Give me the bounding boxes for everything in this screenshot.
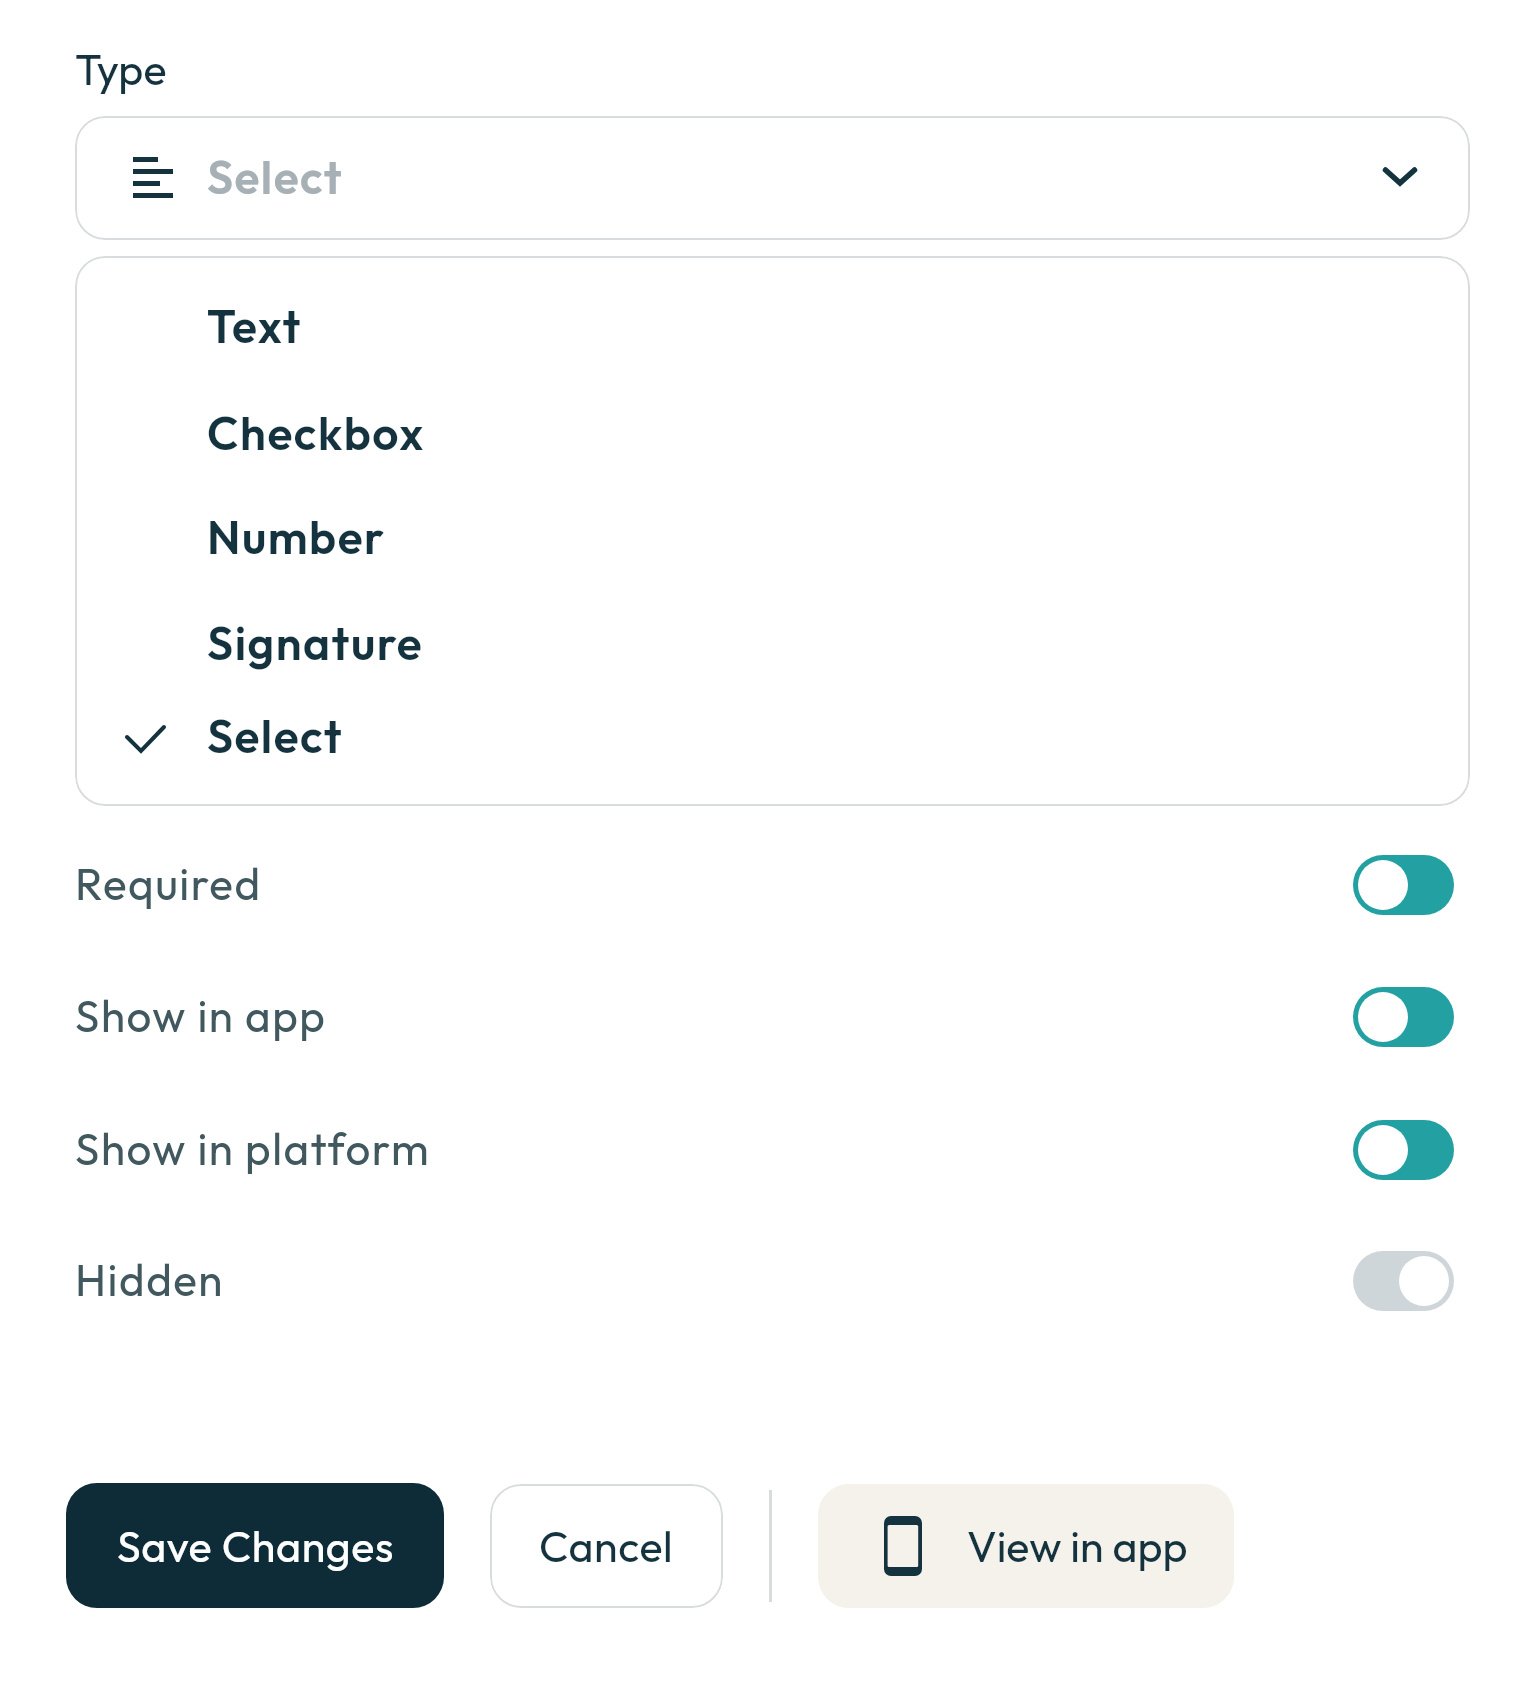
button[interactable]: Cancel bbox=[490, 1484, 723, 1608]
staticText: Number bbox=[207, 508, 386, 566]
button[interactable] bbox=[1353, 855, 1454, 915]
button[interactable]: Number bbox=[75, 486, 1470, 590]
staticText: Select bbox=[207, 148, 344, 206]
button[interactable]: Text bbox=[75, 275, 1470, 379]
button[interactable]: Select bbox=[75, 116, 1470, 240]
button[interactable]: View in app bbox=[818, 1484, 1234, 1608]
button[interactable]: Signature bbox=[75, 592, 1470, 696]
button[interactable]: Checkbox bbox=[75, 382, 1470, 486]
staticText: Show in app bbox=[75, 988, 327, 1043]
staticText: Cancel bbox=[539, 1519, 674, 1573]
staticText: Text bbox=[207, 297, 302, 355]
staticText: Save Changes bbox=[117, 1519, 394, 1573]
staticText: View in app bbox=[967, 1519, 1188, 1573]
staticText: Signature bbox=[207, 614, 424, 672]
staticText: Hidden bbox=[75, 1252, 224, 1307]
staticText: Required bbox=[75, 856, 262, 911]
button[interactable] bbox=[1353, 987, 1454, 1047]
staticText: Show in platform bbox=[75, 1121, 431, 1176]
button[interactable] bbox=[1353, 1120, 1454, 1180]
button[interactable]: Save Changes bbox=[66, 1483, 444, 1608]
staticText: Select bbox=[207, 707, 344, 765]
button[interactable]: Select bbox=[75, 685, 1470, 789]
staticText: Type bbox=[75, 42, 167, 96]
button[interactable] bbox=[1353, 1251, 1454, 1311]
staticText: Checkbox bbox=[207, 404, 425, 462]
